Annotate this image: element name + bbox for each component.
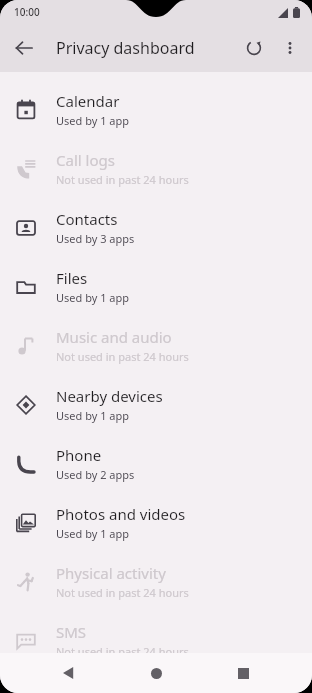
staticText: Not used in past 24 hours <box>56 585 189 600</box>
button[interactable]: Refresh <box>236 30 272 66</box>
button[interactable]: Home <box>138 655 174 691</box>
button[interactable]: More options <box>272 30 308 66</box>
button[interactable]: Photos and videos <box>0 493 312 552</box>
staticText: Not used in past 24 hours <box>56 172 189 187</box>
staticText: Used by 1 app <box>56 408 130 423</box>
button[interactable]: Call logs <box>0 139 312 198</box>
staticText: Physical activity <box>56 563 166 583</box>
staticText: Not used in past 24 hours <box>56 349 189 364</box>
button[interactable]: Back <box>6 30 42 66</box>
button[interactable]: Nearby devices <box>0 375 312 434</box>
button[interactable]: Music and audio <box>0 316 312 375</box>
button[interactable]: Back <box>51 655 87 691</box>
button[interactable]: SMS <box>0 611 312 670</box>
button[interactable]: Files <box>0 257 312 316</box>
button[interactable]: Contacts <box>0 198 312 257</box>
staticText: Nearby devices <box>56 386 163 406</box>
staticText: Privacy dashboard <box>56 37 195 59</box>
staticText: Used by 1 app <box>56 526 130 541</box>
staticText: Contacts <box>56 209 118 229</box>
staticText: Phone <box>56 445 102 465</box>
staticText: Used by 1 app <box>56 290 130 305</box>
button[interactable]: Physical activity <box>0 552 312 611</box>
staticText: Files <box>56 268 88 288</box>
staticText: Used by 3 apps <box>56 231 135 246</box>
staticText: Photos and videos <box>56 504 186 524</box>
button[interactable]: Calendar <box>0 80 312 139</box>
button[interactable]: Recent apps <box>225 655 261 691</box>
staticText: Calendar <box>56 91 120 111</box>
staticText: Used by 1 app <box>56 113 130 128</box>
button[interactable]: Phone <box>0 434 312 493</box>
staticText: Call logs <box>56 150 115 170</box>
staticText: Used by 2 apps <box>56 467 135 482</box>
staticText: SMS <box>56 622 87 642</box>
staticText: 10:00 <box>14 5 40 19</box>
staticText: Music and audio <box>56 327 172 347</box>
staticText: Not used in past 24 hours <box>56 644 189 659</box>
